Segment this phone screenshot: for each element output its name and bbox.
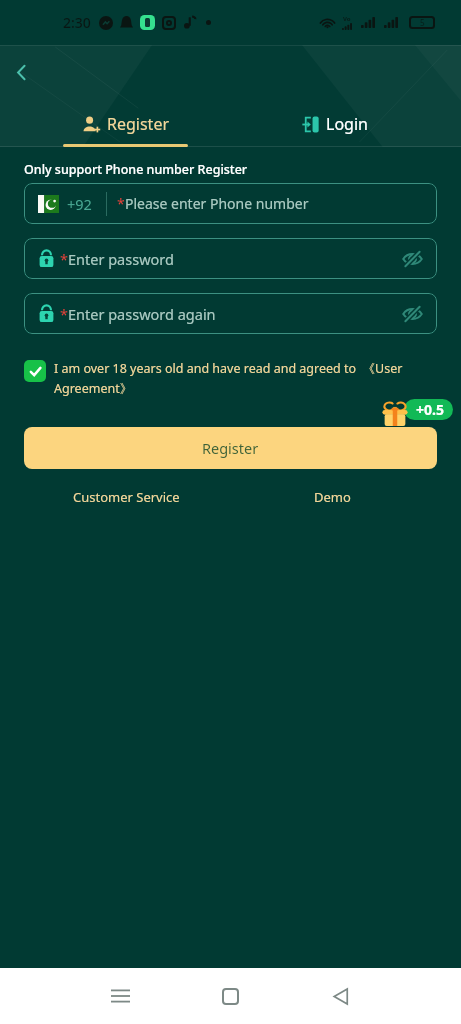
button[interactable]: Register bbox=[24, 427, 437, 469]
button[interactable]: Back bbox=[2, 53, 40, 91]
staticText: Demo bbox=[314, 488, 351, 506]
staticText: Enter password again bbox=[68, 304, 216, 324]
staticText: Please enter Phone number bbox=[125, 194, 309, 213]
button[interactable]: Recents bbox=[66, 968, 175, 1024]
button[interactable]: * bbox=[24, 238, 437, 279]
staticText: 5 bbox=[420, 17, 425, 28]
staticText: * bbox=[60, 304, 68, 324]
staticText: +0.5 bbox=[416, 400, 444, 419]
staticText: Login bbox=[326, 113, 368, 135]
staticText: Only support Phone number Register bbox=[24, 161, 248, 178]
staticText: +92 bbox=[67, 194, 92, 214]
button[interactable]: Demo bbox=[306, 483, 359, 511]
staticText: Vo bbox=[343, 15, 351, 23]
staticText: * bbox=[60, 249, 68, 269]
staticText: Register bbox=[202, 438, 259, 458]
button[interactable]: Show password bbox=[392, 294, 432, 334]
button[interactable]: I am over 18 years old and have read and… bbox=[24, 360, 437, 397]
button[interactable]: Customer Service bbox=[65, 483, 188, 511]
staticText: I am over 18 years old and have read and… bbox=[54, 360, 437, 397]
staticText: Customer Service bbox=[73, 488, 180, 506]
staticText: 2:30 bbox=[63, 13, 91, 32]
button[interactable]: * bbox=[24, 293, 437, 334]
button[interactable]: Home bbox=[175, 968, 285, 1024]
button[interactable]: Back bbox=[285, 968, 395, 1024]
staticText: Register bbox=[107, 113, 170, 135]
staticText: Enter password bbox=[68, 249, 174, 269]
staticText: * bbox=[117, 194, 125, 213]
button[interactable]: Show password bbox=[392, 239, 432, 279]
button[interactable]: Login bbox=[230, 113, 440, 147]
button[interactable]: +92 bbox=[24, 183, 437, 224]
button[interactable]: Register bbox=[21, 113, 230, 147]
